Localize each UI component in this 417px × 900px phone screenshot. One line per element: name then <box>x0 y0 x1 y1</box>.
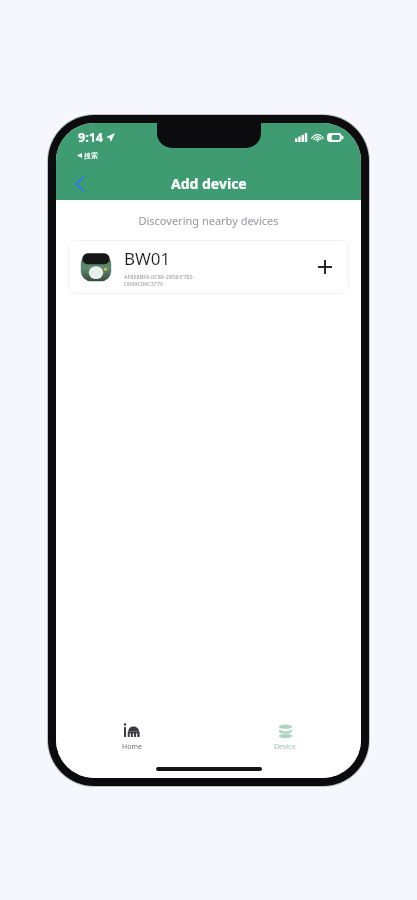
button[interactable]: Home <box>104 719 160 755</box>
staticText: D069C09C377F <box>124 280 163 287</box>
button[interactable]: Add BW01 <box>310 252 340 282</box>
staticText: Device <box>274 742 296 752</box>
button[interactable]: Device <box>256 719 314 755</box>
staticText: Add device <box>171 174 247 193</box>
button[interactable]: Back <box>65 169 95 199</box>
staticText: 9:14 <box>78 129 103 146</box>
button[interactable]: Back to 搜索 <box>75 150 100 161</box>
staticText: BW01 <box>124 247 171 270</box>
button[interactable]: BW01 <box>68 240 349 294</box>
staticText: AF8E8BF6-0C89-2858-E782- <box>124 273 195 280</box>
staticText: Discovering nearby devices <box>56 213 361 228</box>
staticText: 搜索 <box>84 151 98 160</box>
staticText: Home <box>122 742 142 752</box>
